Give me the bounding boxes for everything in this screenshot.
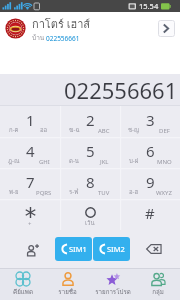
staticText: บ้าน — [32, 33, 46, 43]
staticText: 15.54 — [139, 1, 159, 11]
button[interactable]: คีย์แพด — [0, 269, 45, 300]
staticText: คีย์แพด — [13, 287, 33, 297]
staticText: PQRS — [36, 189, 52, 197]
staticText: รายชื่อ — [58, 287, 77, 297]
staticText: กาโตร์ เฮาส์ — [32, 15, 91, 32]
button[interactable]: + — [0, 199, 60, 230]
staticText: 2 — [86, 110, 95, 130]
button[interactable]: 5 — [60, 137, 120, 168]
staticText: 3 — [146, 110, 155, 130]
button[interactable]: 1 — [0, 106, 60, 137]
button[interactable]: Backspace — [127, 230, 180, 268]
staticText: DEF — [159, 127, 170, 135]
staticText: 1 — [26, 110, 35, 130]
button[interactable]: Expand contact details — [158, 20, 175, 37]
staticText: WXYZ — [156, 189, 172, 197]
staticText: พ-ย — [9, 187, 19, 197]
staticText: เว้น — [85, 218, 95, 228]
button[interactable]: 4 — [0, 137, 60, 168]
staticText: 022556661 — [46, 34, 80, 43]
staticText: 9 — [146, 172, 155, 192]
staticText: GHI — [39, 158, 50, 166]
button[interactable]: SIM2 — [93, 237, 130, 261]
staticText: JKL — [100, 158, 109, 166]
staticText: รายการโปรด — [95, 287, 131, 297]
staticText: ร-ฬ — [69, 187, 79, 197]
staticText: MNO — [157, 158, 172, 166]
button[interactable]: Add to contacts — [0, 230, 52, 268]
button[interactable]: 8 — [60, 168, 120, 199]
button[interactable]: 2 — [60, 106, 120, 137]
staticText: TUV — [98, 189, 110, 197]
staticText: 022556661 — [64, 75, 178, 105]
staticText: อ-ฮ — [129, 187, 139, 197]
staticText: SIM2 — [107, 244, 125, 254]
staticText: 4 — [26, 141, 35, 161]
button[interactable]: 6 — [120, 137, 180, 168]
staticText: ฎ-ณ — [8, 156, 20, 166]
staticText: ช-ญ — [128, 125, 140, 135]
staticText: บ-ฝ — [129, 156, 139, 166]
staticText: ABC — [98, 127, 110, 135]
staticText: ออ — [40, 125, 48, 135]
staticText: 7 — [26, 172, 35, 192]
button[interactable]: เว้น — [60, 199, 120, 230]
staticText: 5 — [86, 141, 95, 161]
staticText: SIM1 — [69, 244, 87, 254]
button[interactable]: กลุ่ม — [135, 269, 180, 300]
button[interactable]: # — [120, 199, 180, 230]
staticText: กลุ่ม — [152, 287, 164, 297]
button[interactable]: 7 — [0, 168, 60, 199]
button[interactable]: รายชื่อ — [45, 269, 90, 300]
staticText: ก-ฅ — [9, 125, 19, 135]
staticText: + — [28, 220, 32, 228]
staticText: 6 — [146, 141, 155, 161]
button[interactable]: รายการโปรด — [90, 269, 135, 300]
button[interactable]: SIM1 — [55, 237, 92, 261]
staticText: ด-น — [69, 156, 79, 166]
button[interactable]: 9 — [120, 168, 180, 199]
staticText: # — [145, 203, 155, 223]
button[interactable]: 3 — [120, 106, 180, 137]
staticText: ฆ-ฉ — [69, 125, 80, 135]
staticText: 8 — [86, 172, 95, 192]
